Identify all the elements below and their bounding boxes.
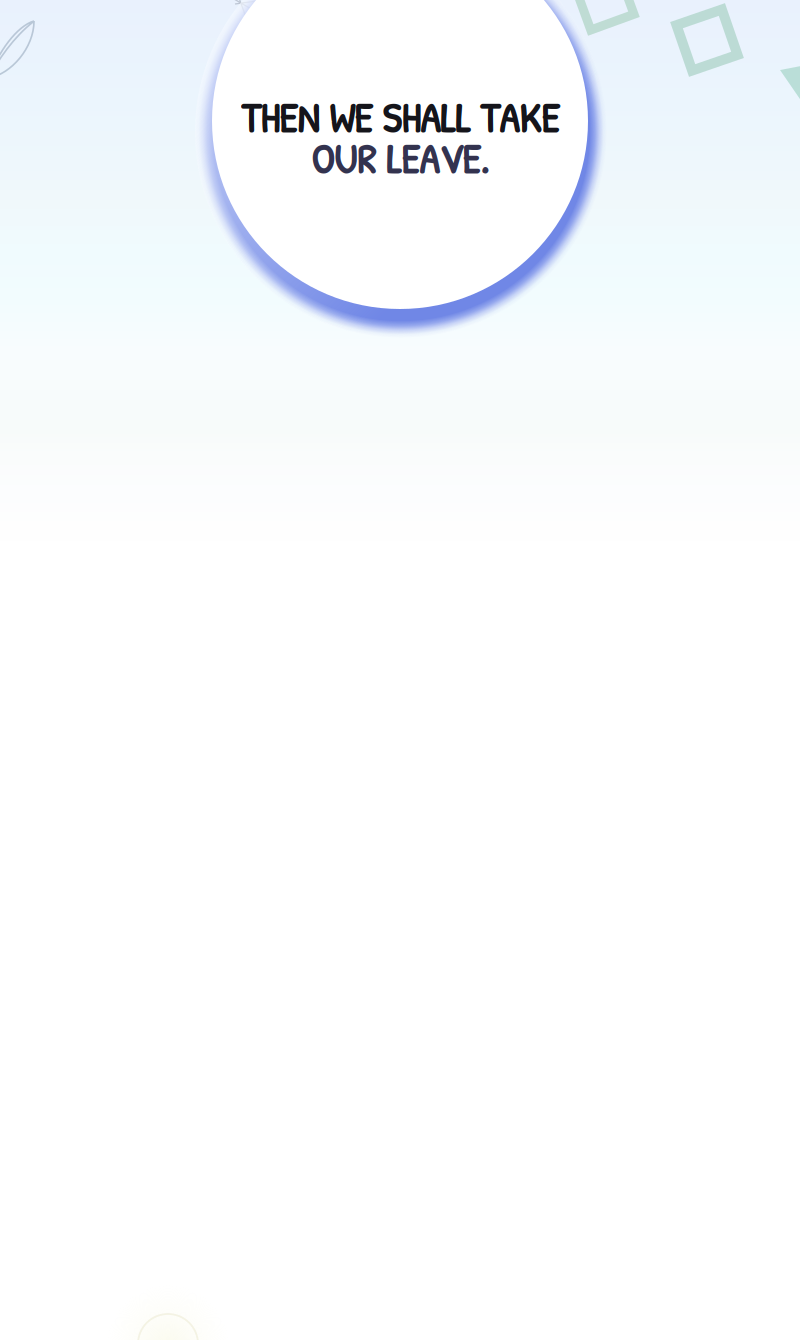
staticText: OUR LEAVE. [311, 130, 489, 186]
staticText: THEN WE SHALL TAKE [241, 89, 559, 145]
